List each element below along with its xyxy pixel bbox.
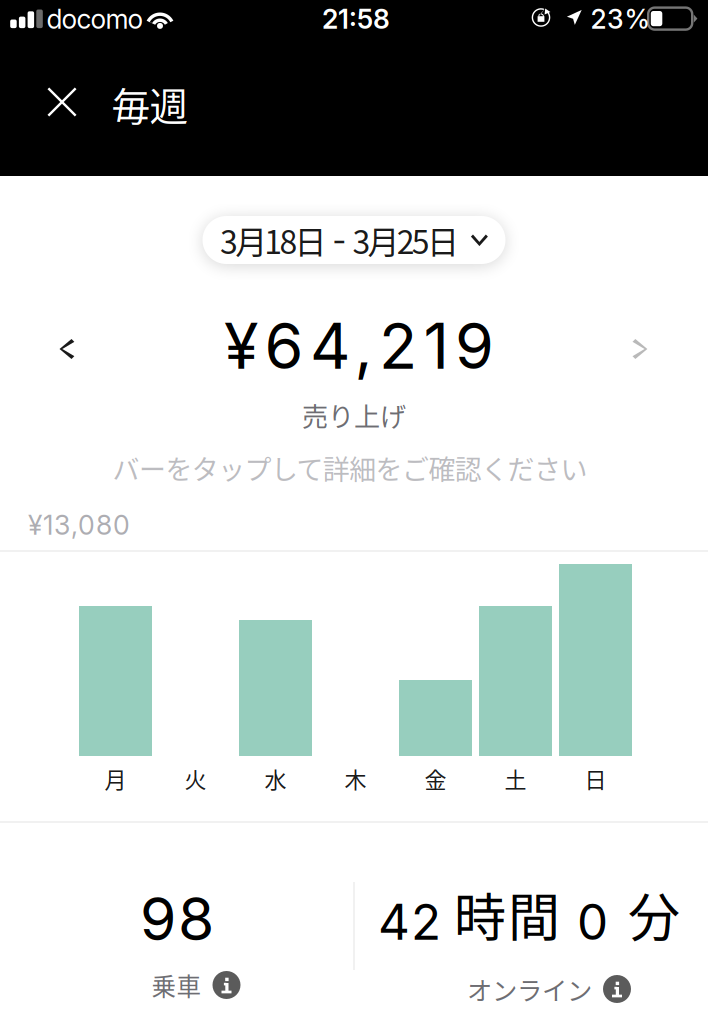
button[interactable]: 次の週 — [612, 321, 668, 377]
staticText: 水 — [264, 763, 286, 794]
button[interactable]: オンライン — [461, 965, 637, 1013]
button[interactable]: 乗車 — [145, 961, 246, 1009]
staticText: 21:58 — [322, 3, 390, 35]
staticText: 金 — [424, 763, 446, 794]
staticText: 0 — [577, 892, 608, 952]
staticText: オンライン — [467, 971, 592, 1007]
staticText: 3月18日 — [220, 217, 326, 263]
staticText: 23% — [590, 3, 649, 35]
staticText: ¥64,219 — [224, 308, 494, 384]
staticText: 98 — [140, 883, 214, 954]
staticText: 売り上げ — [302, 396, 406, 434]
staticText: 日 — [584, 763, 606, 794]
staticText: 火 — [184, 763, 206, 794]
staticText: docomo — [46, 3, 143, 35]
staticText: バーをタップして詳細をご確認ください — [113, 448, 587, 487]
staticText: - — [332, 221, 346, 258]
staticText: 42 — [378, 892, 441, 952]
staticText: ¥13,080 — [28, 509, 130, 541]
staticText: 3月25日 — [352, 217, 459, 263]
button[interactable]: 前の週 — [39, 321, 95, 377]
button[interactable]: 3月18日 — [202, 216, 505, 264]
staticText: 時間 — [454, 876, 560, 952]
staticText: 分 — [628, 876, 680, 952]
staticText: 毎週 — [111, 76, 188, 132]
staticText: 月 — [104, 763, 126, 794]
staticText: 乗車 — [151, 967, 201, 1003]
staticText: 土 — [504, 763, 526, 794]
button[interactable]: 閉じる — [30, 70, 94, 134]
staticText: 木 — [344, 763, 366, 794]
